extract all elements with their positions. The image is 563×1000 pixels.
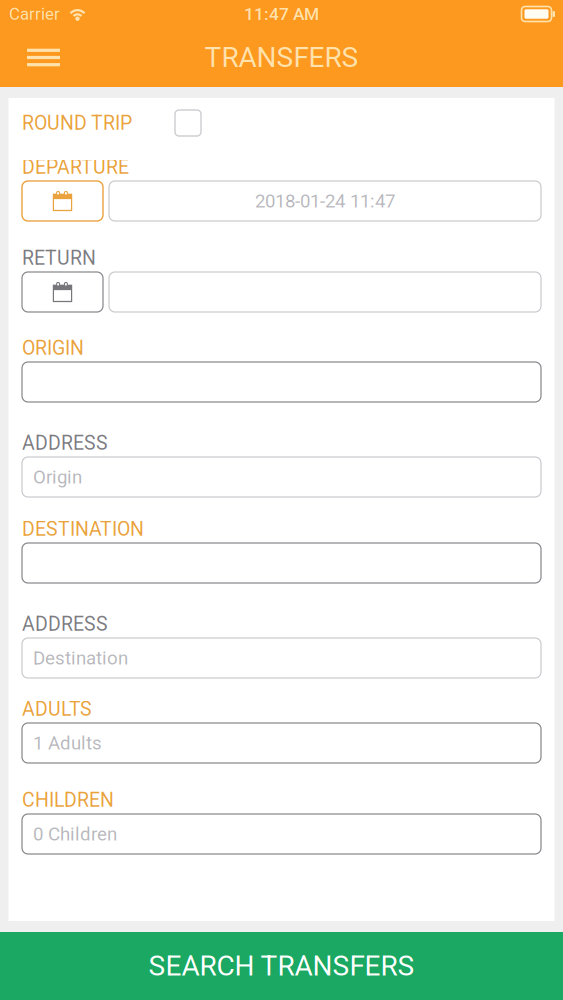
button[interactable]: Origin bbox=[22, 457, 541, 497]
button[interactable]: Pick return date bbox=[22, 272, 103, 312]
staticText: SEARCH TRANSFERS bbox=[148, 950, 414, 982]
staticText: ADDRESS bbox=[22, 613, 108, 635]
button[interactable] bbox=[22, 362, 541, 402]
staticText: Destination bbox=[33, 647, 128, 669]
staticText: DESTINATION bbox=[22, 518, 144, 540]
staticText: ROUND TRIP bbox=[22, 112, 132, 134]
staticText: 2018-01-24 11:47 bbox=[255, 190, 395, 212]
staticText: ADULTS bbox=[22, 698, 92, 720]
button[interactable]: 0 Children bbox=[22, 814, 541, 854]
staticText: 0 Children bbox=[33, 823, 117, 845]
staticText: RETURN bbox=[22, 247, 96, 269]
staticText: TRANSFERS bbox=[204, 41, 358, 74]
staticText: Carrier bbox=[9, 4, 60, 24]
staticText: 11:47 AM bbox=[244, 4, 319, 24]
staticText: ADDRESS bbox=[22, 432, 108, 454]
button[interactable]: Destination bbox=[22, 638, 541, 678]
button[interactable]: Round trip bbox=[175, 110, 201, 136]
button[interactable]: Pick departure date bbox=[22, 181, 103, 221]
staticText: 1 Adults bbox=[33, 732, 102, 754]
staticText: DEPARTURE bbox=[22, 156, 129, 178]
button[interactable]: SEARCH TRANSFERS bbox=[0, 932, 563, 1000]
staticText: ORIGIN bbox=[22, 337, 84, 359]
button[interactable]: Menu bbox=[0, 28, 80, 87]
staticText: CHILDREN bbox=[22, 789, 114, 811]
button[interactable]: 1 Adults bbox=[22, 723, 541, 763]
staticText: Origin bbox=[33, 466, 82, 488]
button[interactable] bbox=[22, 543, 541, 583]
